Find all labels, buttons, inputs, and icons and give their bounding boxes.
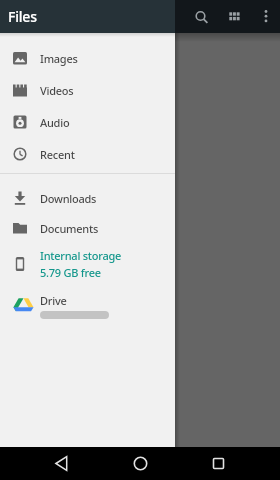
button[interactable]: Drive: [0, 285, 175, 327]
staticText: 5.79 GB free: [40, 265, 101, 280]
button[interactable]: [255, 0, 277, 33]
staticText: Downloads: [40, 191, 97, 206]
staticText: Images: [40, 51, 78, 66]
button[interactable]: Audio: [0, 106, 175, 138]
staticText: Audio: [40, 115, 70, 130]
button[interactable]: [190, 0, 215, 33]
button[interactable]: [175, 0, 280, 447]
button[interactable]: [125, 447, 156, 480]
button[interactable]: [203, 447, 234, 480]
staticText: Internal storage: [40, 248, 122, 263]
button[interactable]: Videos: [0, 74, 175, 106]
staticText: Documents: [40, 221, 98, 236]
staticText: Files: [8, 7, 37, 26]
button[interactable]: Documents: [0, 213, 175, 243]
button[interactable]: Internal storage: [0, 243, 175, 285]
button[interactable]: [46, 447, 77, 480]
button[interactable]: Recent: [0, 138, 175, 170]
button[interactable]: Images: [0, 42, 175, 74]
button[interactable]: Downloads: [0, 183, 175, 213]
staticText: Videos: [40, 83, 74, 98]
staticText: Drive: [40, 293, 67, 308]
staticText: Recent: [40, 147, 75, 162]
button[interactable]: [222, 0, 247, 33]
